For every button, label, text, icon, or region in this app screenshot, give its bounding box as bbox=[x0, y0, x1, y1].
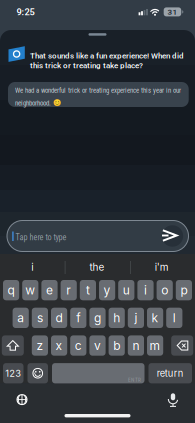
button[interactable]: r bbox=[61, 280, 77, 300]
staticText: w bbox=[25, 283, 35, 297]
button[interactable]: m bbox=[147, 335, 163, 356]
button[interactable]: y bbox=[99, 280, 115, 300]
staticText: i bbox=[31, 261, 33, 273]
staticText: 9:25 bbox=[16, 6, 34, 17]
staticText: v bbox=[94, 338, 101, 353]
button[interactable]: x bbox=[51, 335, 67, 356]
button[interactable]: w bbox=[22, 280, 38, 300]
staticText: l bbox=[173, 311, 176, 325]
button[interactable]: Send bbox=[162, 225, 183, 247]
button[interactable]: z bbox=[32, 335, 48, 356]
button[interactable]: 123 bbox=[3, 363, 23, 383]
staticText: i bbox=[144, 283, 147, 297]
button[interactable]: i'm bbox=[129, 254, 194, 280]
staticText: Tap here to type bbox=[15, 232, 66, 242]
button[interactable]: return bbox=[148, 363, 192, 383]
staticText: o bbox=[161, 283, 168, 297]
button[interactable]: a bbox=[13, 308, 29, 328]
button[interactable]: k bbox=[147, 308, 163, 328]
staticText: y bbox=[104, 283, 111, 297]
staticText: h bbox=[113, 311, 120, 325]
staticText: d bbox=[56, 311, 63, 325]
button[interactable]: Delete bbox=[171, 335, 193, 356]
staticText: f bbox=[76, 311, 80, 325]
staticText: z bbox=[36, 338, 43, 353]
staticText: t bbox=[86, 283, 90, 297]
button[interactable]: j bbox=[128, 308, 144, 328]
button[interactable]: u bbox=[118, 280, 134, 300]
staticText: EN TR bbox=[128, 377, 141, 383]
button[interactable]: g bbox=[89, 308, 106, 328]
staticText: c bbox=[75, 338, 82, 353]
staticText: a bbox=[17, 311, 24, 325]
staticText: s bbox=[37, 311, 43, 325]
button[interactable]: q bbox=[3, 280, 19, 300]
staticText: u bbox=[123, 283, 130, 297]
button[interactable]: v bbox=[89, 335, 106, 356]
button[interactable]: n bbox=[128, 335, 144, 356]
staticText: That sounds like a fun experience! When … bbox=[30, 51, 184, 70]
button[interactable]: the bbox=[65, 254, 129, 280]
button[interactable]: i bbox=[0, 254, 65, 280]
staticText: j bbox=[134, 311, 137, 325]
button[interactable]: h bbox=[109, 308, 125, 328]
staticText: the bbox=[90, 261, 105, 273]
button[interactable]: s bbox=[32, 308, 48, 328]
staticText: 31 bbox=[167, 7, 177, 17]
staticText: x bbox=[56, 338, 63, 353]
button[interactable]: i bbox=[137, 280, 154, 300]
staticText: We had a wonderful trick or treating exp… bbox=[15, 86, 181, 107]
staticText: q bbox=[8, 283, 15, 297]
staticText: b bbox=[113, 338, 120, 353]
staticText: r bbox=[66, 283, 71, 297]
button[interactable]: t bbox=[80, 280, 96, 300]
staticText: return bbox=[157, 368, 184, 379]
staticText: n bbox=[132, 338, 139, 353]
button[interactable]: c bbox=[70, 335, 86, 356]
button[interactable]: e bbox=[41, 280, 58, 300]
button[interactable]: f bbox=[70, 308, 86, 328]
button[interactable]: d bbox=[51, 308, 67, 328]
staticText: m bbox=[150, 338, 161, 353]
button[interactable]: l bbox=[166, 308, 182, 328]
button[interactable]: Dictate bbox=[162, 393, 184, 417]
button[interactable]: p bbox=[176, 280, 192, 300]
button[interactable]: o bbox=[157, 280, 173, 300]
button[interactable]: Emoji bbox=[27, 363, 48, 383]
staticText: g bbox=[94, 311, 101, 325]
button[interactable]: Space bbox=[52, 363, 144, 383]
button[interactable]: Next keyboard bbox=[9, 388, 35, 412]
button[interactable]: Type a message bbox=[7, 220, 188, 251]
staticText: k bbox=[152, 311, 159, 325]
button[interactable]: Shift bbox=[2, 335, 24, 356]
staticText: p bbox=[180, 283, 187, 297]
staticText: 123 bbox=[5, 368, 21, 379]
staticText: e bbox=[46, 283, 53, 297]
staticText: i'm bbox=[155, 261, 169, 273]
button[interactable]: b bbox=[109, 335, 125, 356]
